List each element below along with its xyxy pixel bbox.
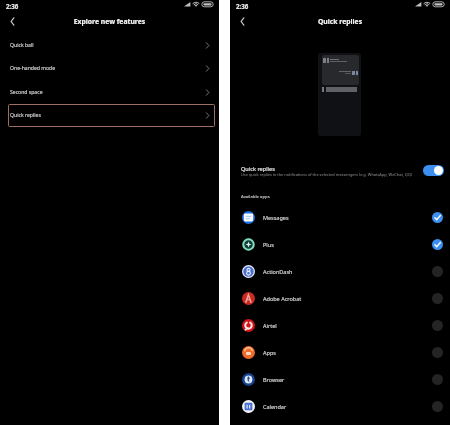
button[interactable]: Second space xyxy=(8,81,215,104)
button[interactable]: Apps xyxy=(230,339,450,366)
staticText: Second space xyxy=(10,89,43,96)
staticText: Plus xyxy=(263,241,274,248)
staticText: Messages xyxy=(263,214,289,221)
staticText: Available apps xyxy=(241,193,270,199)
button[interactable]: Adobe Acrobat xyxy=(230,285,450,312)
button[interactable]: Browser xyxy=(230,366,450,393)
button[interactable]: Quick replies xyxy=(8,104,215,127)
staticText: Browser xyxy=(263,376,285,383)
staticText: Quick replies xyxy=(10,112,41,119)
staticText: Explore new features xyxy=(0,17,219,26)
staticText: Calendar xyxy=(263,403,287,410)
button[interactable]: Quick replies toggle xyxy=(423,165,444,176)
button[interactable]: One-handed mode xyxy=(8,57,215,80)
staticText: Quick ball xyxy=(10,42,34,49)
button[interactable]: Calendar xyxy=(230,393,450,420)
button[interactable]: Quick ball xyxy=(8,34,215,57)
button[interactable]: Back xyxy=(234,13,251,30)
staticText: ActionDash xyxy=(263,268,293,275)
button[interactable]: ActionDash xyxy=(230,258,450,285)
staticText: Use quick replies in the notifications o… xyxy=(241,172,413,177)
button[interactable]: Plus xyxy=(230,231,450,258)
staticText: 2:36 xyxy=(236,2,249,10)
staticText: One-handed mode xyxy=(10,65,56,72)
button[interactable]: Quick replies xyxy=(230,160,450,184)
button[interactable]: Airtel xyxy=(230,312,450,339)
staticText: Apps xyxy=(263,349,276,356)
staticText: Adobe Acrobat xyxy=(263,295,302,302)
staticText: Quick replies xyxy=(241,165,275,173)
button[interactable]: Back xyxy=(4,13,21,30)
staticText: Quick replies xyxy=(230,17,450,26)
staticText: Airtel xyxy=(263,322,277,329)
button[interactable]: Messages xyxy=(230,204,450,231)
staticText: 2:36 xyxy=(6,2,19,10)
